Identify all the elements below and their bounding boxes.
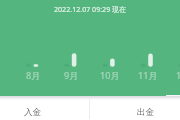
staticText: 12月: [176, 69, 180, 82]
staticText: 入金: [24, 107, 42, 118]
staticText: 出金: [137, 107, 155, 118]
staticText: 11月: [138, 69, 158, 82]
button[interactable]: 出金: [124, 100, 168, 120]
staticText: 8月: [26, 69, 41, 82]
staticText: 10月: [100, 69, 120, 82]
button[interactable]: 入金: [11, 100, 55, 120]
staticText: 9月: [64, 69, 79, 82]
staticText: 2022.12.07 09:29 現在: [54, 4, 127, 14]
